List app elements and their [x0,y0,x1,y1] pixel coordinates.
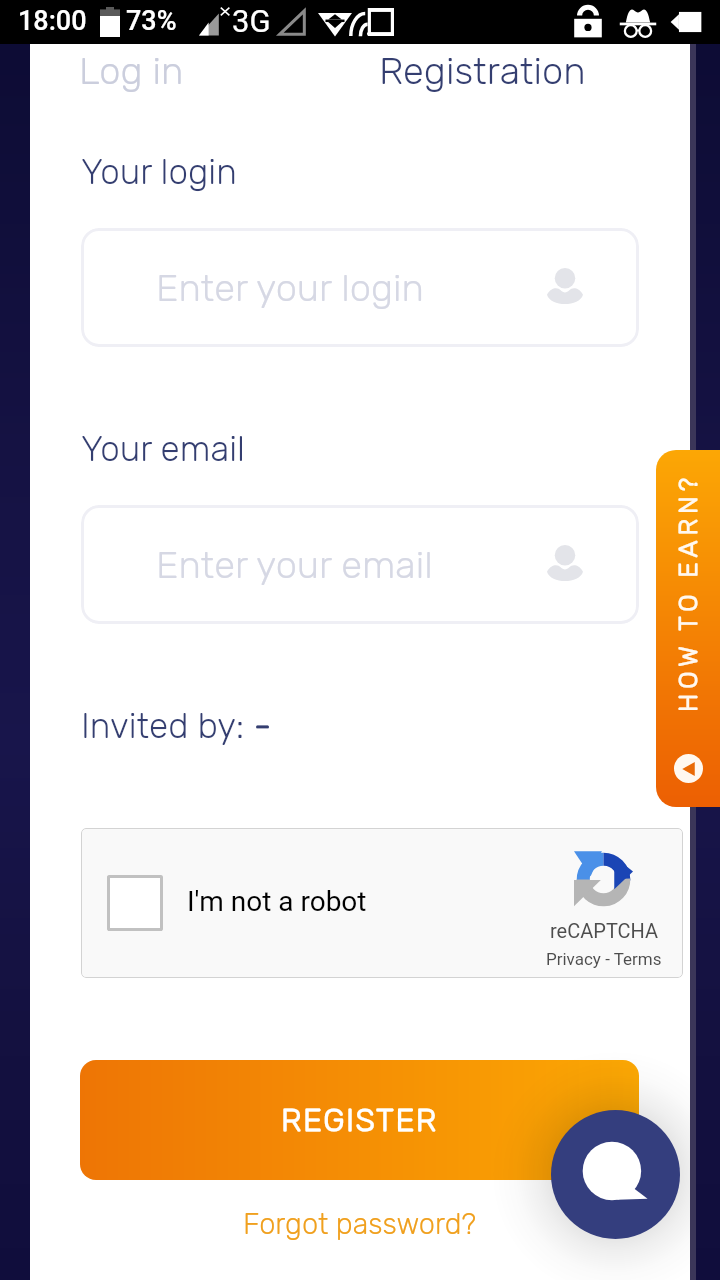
staticText: 18:00 [18,5,87,37]
staticText: HOW TO EARN? [673,473,704,712]
staticText: REGISTER [281,1101,438,1139]
staticText: Your email [81,428,245,469]
staticText: Registration [379,48,586,93]
button[interactable]: Log in [31,44,231,102]
staticText: reCAPTCHA [550,919,659,942]
staticText: Log in [79,48,184,93]
staticText: - [254,705,272,746]
staticText: I'm not a robot [187,885,367,918]
button[interactable]: Forgot password? [210,1196,510,1252]
staticText: 3G [232,3,271,39]
button[interactable]: Enter your email [81,505,639,624]
button[interactable]: I'm not a robot checkbox [107,875,163,931]
staticText: Enter your login [156,265,424,310]
button[interactable]: Registration [322,44,643,102]
staticText: Privacy - Terms [546,949,662,969]
staticText: Invited by: [81,705,254,746]
staticText: Forgot password? [243,1207,477,1241]
button[interactable]: REGISTER [80,1060,639,1180]
staticText: Enter your email [156,542,433,587]
button[interactable]: Chat support [551,1110,680,1239]
staticText: Your login [81,151,237,192]
button[interactable]: HOW TO EARN? [656,450,720,807]
button[interactable]: Enter your login [81,228,639,347]
staticText: 73% [126,5,177,37]
